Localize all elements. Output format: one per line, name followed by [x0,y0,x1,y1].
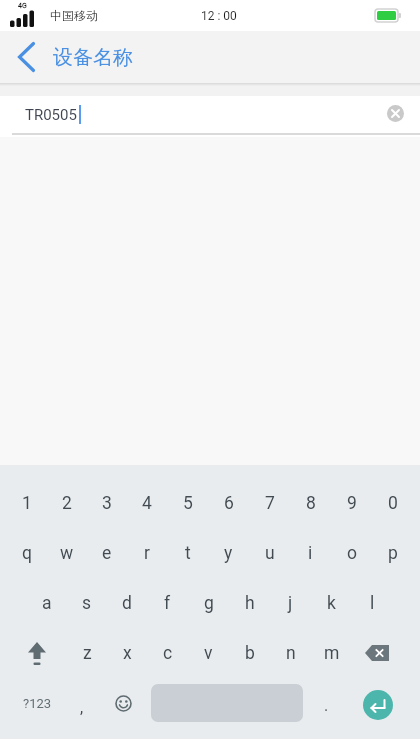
button[interactable]: n [270,628,311,678]
staticText: b [245,643,255,664]
button[interactable] [363,690,393,720]
button[interactable]: w [47,528,87,578]
button[interactable] [7,628,67,678]
staticText: 9 [347,493,357,514]
staticText: n [286,643,296,664]
button[interactable]: e [87,528,127,578]
button[interactable]: m [311,628,352,678]
button[interactable]: v [188,628,229,678]
button[interactable]: k [311,578,352,628]
button[interactable]: 3 [87,478,127,528]
staticText: 8 [306,493,316,514]
button[interactable]: ?123 [7,678,67,728]
staticText: 0 [388,493,398,514]
staticText: s [82,593,92,614]
staticText: o [347,543,357,564]
button[interactable]: 9 [331,478,372,528]
button[interactable]: g [188,578,229,628]
button[interactable]: , [67,678,108,728]
staticText: y [224,543,233,564]
staticText: g [204,593,214,614]
button[interactable]: i [290,528,331,578]
staticText: 6 [224,493,234,514]
staticText: q [22,543,32,564]
staticText: 4G [18,2,27,10]
button[interactable]: . [311,678,352,728]
button[interactable]: 8 [290,478,331,528]
staticText: v [204,643,213,664]
button[interactable]: l [352,578,393,628]
button[interactable]: y [208,528,249,578]
staticText: m [324,643,340,664]
button[interactable]: 设备名称 [0,31,420,83]
button[interactable] [108,678,149,728]
staticText: ?123 [23,696,52,711]
button[interactable]: 1 [7,478,47,528]
button[interactable]: q [7,528,47,578]
button[interactable]: z [67,628,107,678]
button[interactable]: 4 [127,478,167,528]
staticText: TR0505 [25,106,77,124]
button[interactable]: 6 [208,478,249,528]
button[interactable]: s [67,578,107,628]
staticText: 5 [183,493,193,514]
staticText: 3 [102,493,112,514]
staticText: j [288,593,293,614]
button[interactable] [387,105,404,122]
button[interactable]: x [107,628,147,678]
button[interactable]: p [372,528,413,578]
staticText: 12 : 00 [201,9,237,23]
button[interactable]: b [229,628,270,678]
button[interactable]: d [107,578,147,628]
button[interactable]: 0 [372,478,413,528]
button[interactable]: r [127,528,167,578]
staticText: p [388,543,398,564]
staticText: 中国移动 [50,8,98,23]
button[interactable]: h [229,578,270,628]
staticText: u [265,543,275,564]
button[interactable]: a [27,578,67,628]
button[interactable]: 5 [167,478,208,528]
staticText: z [83,643,92,664]
staticText: w [60,543,74,564]
staticText: d [122,593,132,614]
staticText: l [370,593,375,614]
button[interactable]: o [331,528,372,578]
staticText: i [308,543,313,564]
staticText: 4 [142,493,152,514]
button[interactable]: 2 [47,478,87,528]
button[interactable]: u [249,528,290,578]
staticText: a [42,593,52,614]
staticText: t [185,543,191,564]
staticText: c [163,643,173,664]
staticText: r [144,543,150,564]
staticText: h [245,593,255,614]
staticText: k [327,593,336,614]
button[interactable]: j [270,578,311,628]
button[interactable] [352,628,413,678]
staticText: e [102,543,112,564]
staticText: 1 [22,493,32,514]
staticText: 2 [62,493,72,514]
staticText: 设备名称 [53,45,133,70]
button[interactable]: t [167,528,208,578]
button[interactable]: 7 [249,478,290,528]
staticText: , [80,698,84,717]
button[interactable]: TR0505 [0,96,420,137]
staticText: 7 [265,493,275,514]
staticText: f [164,593,171,614]
button[interactable]: f [147,578,188,628]
staticText: . [324,696,329,715]
staticText: x [123,643,132,664]
button[interactable]: c [147,628,188,678]
